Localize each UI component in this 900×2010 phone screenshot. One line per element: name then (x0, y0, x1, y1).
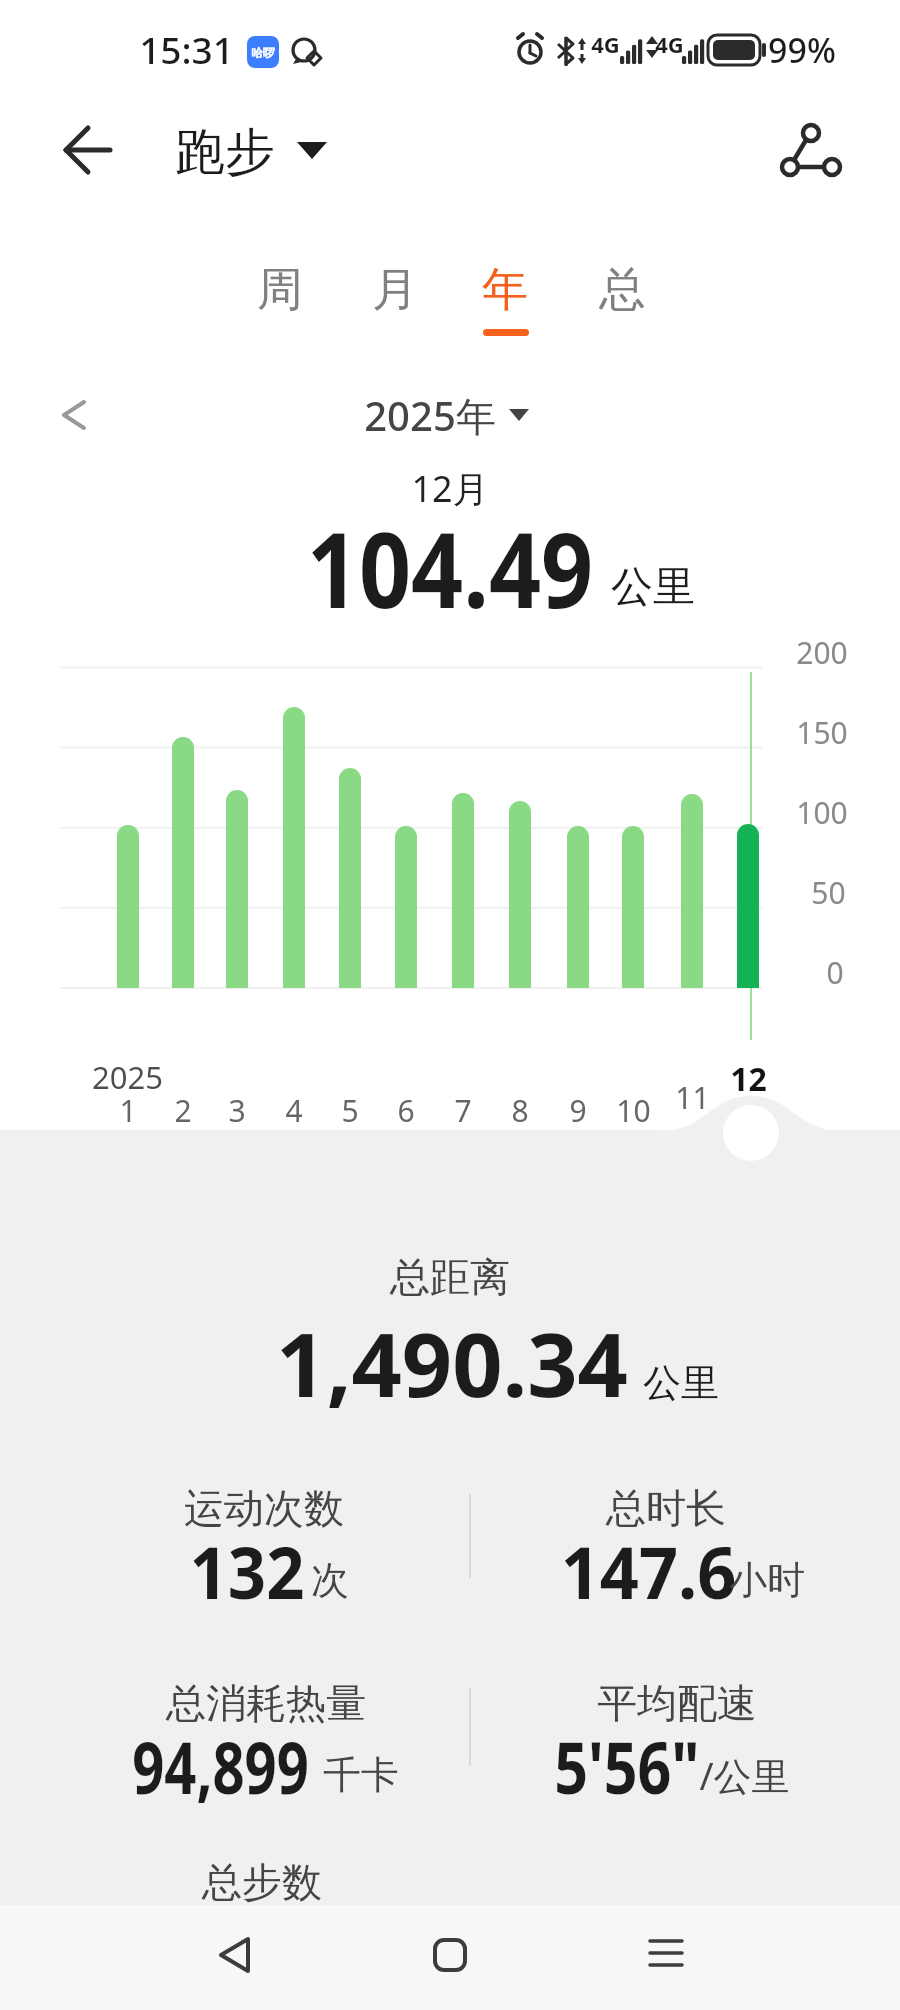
button[interactable] (615, 1915, 715, 1995)
staticText: 100 (796, 792, 848, 833)
staticText: /公里 (699, 1749, 790, 1801)
staticText: 15:31 (139, 24, 234, 74)
staticText: 6 (397, 1090, 415, 1131)
staticText: 2 (174, 1090, 192, 1131)
staticText: 12月 (411, 464, 489, 513)
staticText: 0 (826, 952, 844, 993)
staticText: 132 (189, 1522, 305, 1620)
staticText: 年 (482, 261, 528, 319)
staticText: 2025 (92, 1056, 163, 1098)
staticText: 运动次数 (184, 1483, 344, 1533)
staticText: 99% (768, 27, 836, 73)
staticText: 平均配速 (597, 1678, 757, 1728)
staticText: 8 (511, 1090, 529, 1131)
staticText: 4G (655, 29, 684, 59)
staticText: 总 (599, 261, 645, 319)
button[interactable]: 跑步 (165, 118, 340, 184)
staticText: 147.6 (561, 1522, 736, 1620)
button[interactable]: 年 (460, 255, 550, 325)
staticText: 200 (796, 632, 848, 673)
staticText: 4G (591, 29, 620, 59)
staticText: 5 (341, 1090, 359, 1131)
staticText: 千卡 (323, 1751, 399, 1799)
staticText: 1 (119, 1090, 137, 1131)
button[interactable] (330, 385, 540, 445)
staticText: 4 (285, 1090, 303, 1131)
staticText: 公里 (611, 561, 695, 614)
staticText: 5'56" (554, 1717, 700, 1815)
staticText: 周 (257, 261, 303, 319)
staticText: 总步数 (202, 1857, 322, 1907)
staticText: 3 (228, 1090, 246, 1131)
staticText: 总消耗热量 (166, 1678, 366, 1728)
staticText: 9 (569, 1090, 587, 1131)
staticText: 月 (372, 261, 418, 319)
staticText: 哈啰 (251, 45, 275, 60)
staticText: 11 (675, 1077, 710, 1118)
button[interactable]: 月 (350, 255, 440, 325)
staticText: 小时 (729, 1556, 805, 1604)
button[interactable] (400, 1915, 500, 1995)
staticText: 50 (811, 872, 846, 913)
button[interactable] (721, 1102, 781, 1162)
staticText: 跑步 (175, 121, 275, 184)
button[interactable] (40, 390, 100, 440)
staticText: 94,899 (132, 1717, 309, 1815)
button[interactable]: 周 (235, 255, 325, 325)
staticText: 总时长 (606, 1483, 726, 1533)
button[interactable] (50, 120, 125, 180)
staticText: 1,490.34 (276, 1303, 628, 1423)
staticText: 10 (616, 1090, 651, 1131)
button[interactable] (765, 115, 855, 190)
button[interactable]: 总 (577, 255, 667, 325)
staticText: 次 (311, 1556, 349, 1604)
staticText: 总距离 (390, 1252, 510, 1302)
staticText: 公里 (643, 1359, 719, 1407)
staticText: 12 (730, 1057, 767, 1101)
staticText: 2025年 (364, 388, 496, 443)
staticText: 150 (796, 712, 848, 753)
staticText: 7 (454, 1090, 472, 1131)
staticText: 104.49 (306, 496, 593, 639)
button[interactable] (185, 1915, 285, 1995)
